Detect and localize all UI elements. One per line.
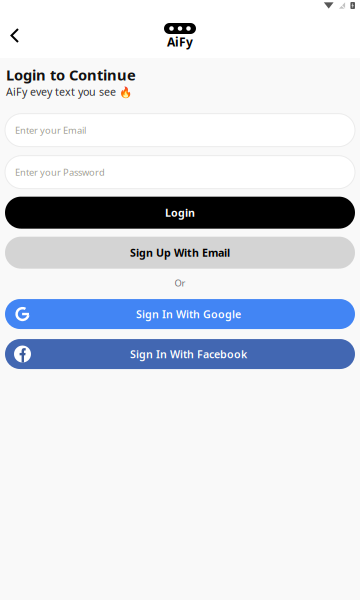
- button[interactable]: Sign Up With Email: [5, 237, 355, 269]
- button[interactable]: Sign In With Google: [5, 299, 355, 329]
- button[interactable]: Back: [1, 22, 29, 50]
- staticText: Login to Continue: [6, 65, 136, 84]
- staticText: Enter your Password: [15, 166, 105, 178]
- staticText: AiFy: [167, 34, 193, 50]
- staticText: Or: [174, 277, 185, 289]
- staticText: Enter your Email: [15, 124, 86, 136]
- staticText: Sign In With Google: [136, 307, 241, 321]
- button[interactable]: Sign In With Facebook: [5, 339, 355, 369]
- textField[interactable]: Enter your Email: [15, 124, 355, 136]
- staticText: Login: [165, 206, 195, 220]
- staticText: AiFy evey text you see 🔥: [6, 84, 132, 99]
- staticText: Sign Up With Email: [130, 246, 230, 260]
- staticText: Sign In With Facebook: [130, 347, 247, 361]
- button[interactable]: Login: [5, 197, 355, 229]
- secureTextField[interactable]: Enter your Password: [15, 166, 355, 178]
